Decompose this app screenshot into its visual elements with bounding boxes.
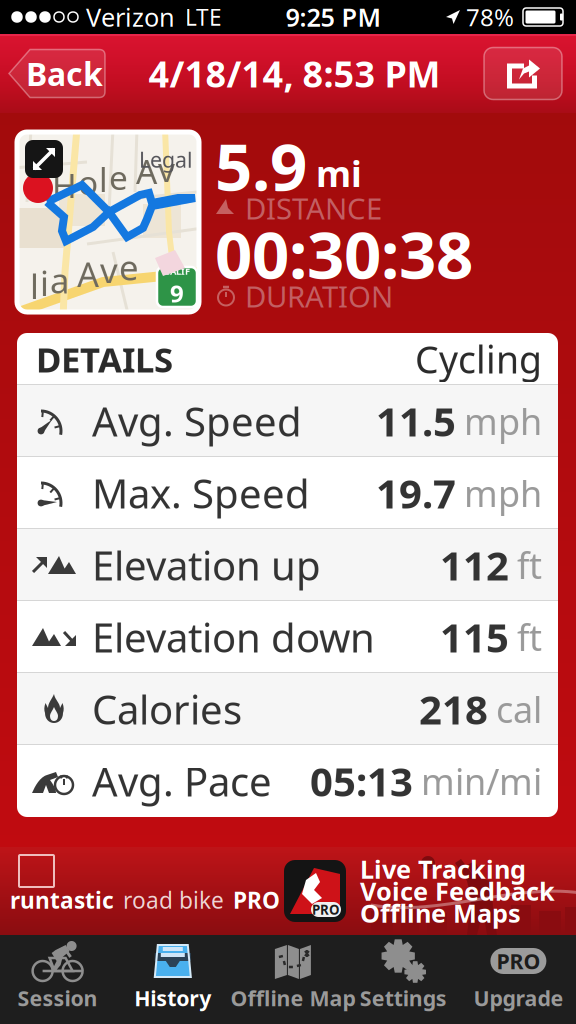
staticText: Back bbox=[26, 52, 103, 95]
staticText: 115 bbox=[440, 610, 509, 663]
button[interactable]: Share bbox=[484, 47, 576, 99]
staticText: Legal bbox=[139, 145, 193, 174]
staticText: Upgrade bbox=[473, 984, 563, 1012]
staticText: Session bbox=[18, 984, 98, 1012]
staticText: Live Tracking bbox=[360, 852, 526, 886]
staticText: 19.7 bbox=[376, 466, 456, 519]
button[interactable]: History bbox=[115, 935, 230, 1024]
staticText: 78% bbox=[466, 1, 514, 33]
staticText: DURATION bbox=[245, 276, 393, 315]
staticText: Offline Maps bbox=[360, 896, 521, 930]
button[interactable]: Settings bbox=[346, 935, 461, 1024]
button[interactable]: Max. Speed bbox=[17, 457, 558, 529]
staticText: Max. Speed bbox=[92, 466, 310, 519]
staticText: A bbox=[136, 149, 157, 193]
staticText: 05:13 bbox=[310, 754, 413, 807]
button[interactable]: Elevation down bbox=[17, 601, 558, 673]
staticText: cal bbox=[496, 685, 542, 733]
staticText: DETAILS bbox=[36, 336, 173, 382]
staticText: PRO bbox=[496, 947, 540, 975]
staticText: mph bbox=[464, 397, 542, 445]
staticText: mi bbox=[316, 149, 362, 197]
button[interactable]: Avg. Speed bbox=[17, 385, 558, 457]
staticText: e bbox=[109, 155, 128, 199]
staticText: 00:30:38 bbox=[215, 210, 473, 297]
staticText: Elevation down bbox=[92, 610, 375, 663]
staticText: v bbox=[100, 247, 118, 293]
button[interactable]: Back bbox=[0, 49, 105, 97]
staticText: e bbox=[119, 244, 139, 290]
staticText: 218 bbox=[419, 682, 488, 735]
staticText: min/mi bbox=[421, 757, 542, 805]
staticText: Settings bbox=[360, 984, 447, 1012]
button[interactable]: Avg. Pace bbox=[17, 745, 558, 817]
staticText: 4/18/14, 8:53 PM bbox=[148, 50, 440, 97]
staticText: A bbox=[77, 251, 99, 297]
staticText: Avg. Pace bbox=[92, 754, 272, 807]
staticText: CALIF bbox=[164, 265, 190, 277]
staticText: PRO bbox=[312, 901, 340, 918]
staticText: i bbox=[40, 260, 49, 306]
staticText: v bbox=[158, 147, 175, 191]
staticText: 11.5 bbox=[376, 394, 456, 447]
staticText: ft bbox=[517, 613, 542, 661]
staticText: Calories bbox=[92, 682, 242, 735]
staticText: Voice Feedback bbox=[360, 874, 555, 908]
button[interactable]: Calories bbox=[17, 673, 558, 745]
staticText: road bike bbox=[123, 885, 224, 915]
button[interactable]: Offline Map bbox=[230, 935, 346, 1024]
staticText: 112 bbox=[440, 538, 509, 591]
staticText: a bbox=[50, 257, 69, 303]
button[interactable]: PRO bbox=[461, 935, 576, 1024]
staticText: l bbox=[30, 263, 39, 309]
staticText: DISTANCE bbox=[245, 188, 382, 227]
staticText: Avg. Speed bbox=[92, 394, 302, 447]
staticText bbox=[70, 259, 76, 287]
staticText: ft bbox=[517, 541, 542, 589]
staticText: History bbox=[134, 984, 211, 1012]
staticText: Elevation up bbox=[92, 538, 321, 591]
staticText: l bbox=[99, 157, 108, 201]
staticText: 9 bbox=[170, 277, 184, 309]
staticText: 5.9 bbox=[215, 122, 307, 209]
staticText: H bbox=[52, 163, 77, 207]
staticText: o bbox=[78, 160, 98, 204]
button[interactable]: Session bbox=[0, 935, 115, 1024]
staticText: runtastic bbox=[10, 885, 114, 915]
staticText: Cycling bbox=[415, 334, 542, 384]
staticText: LTE bbox=[185, 2, 222, 32]
staticText: mph bbox=[464, 469, 542, 517]
staticText: Offline Map bbox=[230, 984, 355, 1012]
staticText: 9:25 PM bbox=[285, 0, 381, 34]
button[interactable]: Upgrade to Runtastic Road Bike PRO bbox=[0, 847, 576, 935]
staticText: PRO bbox=[233, 885, 280, 915]
staticText bbox=[129, 159, 135, 187]
staticText: Verizon bbox=[86, 0, 175, 34]
button[interactable]: Elevation up bbox=[17, 529, 558, 601]
